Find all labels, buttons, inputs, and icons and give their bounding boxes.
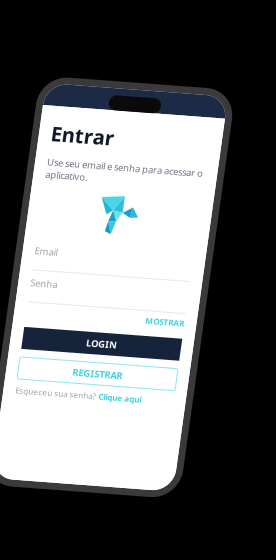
button[interactable]: MOSTRAR — [178, 305, 217, 315]
button[interactable]: Clique aqui — [142, 383, 185, 394]
button[interactable]: LOGIN — [59, 325, 217, 347]
staticText: LOGIN — [122, 330, 153, 343]
staticText: Entrar — [59, 118, 122, 145]
staticText: Esqueceu sua senha? — [59, 383, 139, 394]
staticText: REGISTRAR — [113, 360, 163, 373]
staticText: Use seu email e senha para acessar o apl… — [59, 154, 215, 179]
staticText: Clique aqui — [142, 383, 185, 394]
staticText: MOSTRAR — [178, 305, 217, 315]
button[interactable]: REGISTRAR — [59, 355, 217, 377]
